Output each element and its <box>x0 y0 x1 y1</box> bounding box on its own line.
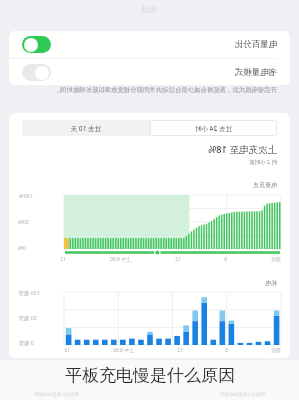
staticText: 电量历史 <box>253 181 277 189</box>
button[interactable]: 省电量模式 <box>9 59 290 85</box>
staticText: 上次充电至 18% <box>208 143 277 156</box>
staticText: 0 毫安 <box>18 339 34 347</box>
staticText: 电池 <box>141 4 157 14</box>
staticText: 50% <box>18 218 29 225</box>
staticText: 0% <box>18 244 26 251</box>
staticText: 12 <box>60 256 66 263</box>
other: Off <box>22 64 51 81</box>
button[interactable]: 过去 10 天 <box>22 120 150 136</box>
staticText: 平板充电慢是什么原因 <box>65 365 235 386</box>
staticText: 过去 24 小时 <box>195 124 232 133</box>
staticText: 约 2 小时前 <box>248 158 277 166</box>
staticText: 电量百分比 <box>234 39 277 50</box>
staticText: 省电量模式 <box>234 67 277 78</box>
staticText: 12 <box>64 347 70 354</box>
other: On <box>22 36 51 53</box>
staticText: 平板充电慢是什么原因 <box>34 392 79 398</box>
staticText: 上午 6:00 <box>109 256 131 263</box>
staticText: 上午 6:00 <box>112 347 134 354</box>
button[interactable]: 电量百分比 <box>9 31 290 58</box>
staticText: 12 <box>175 256 181 263</box>
staticText: 100 毫安 <box>18 289 40 297</box>
staticText: 100% <box>18 192 33 199</box>
staticText: 6 <box>224 256 227 263</box>
staticText: 过去 10 天 <box>70 124 101 133</box>
staticText: 6 <box>225 347 228 354</box>
staticText: 耗电 <box>265 279 277 287</box>
staticText: 开启省电模式后，系统将会减少后台活动并关闭部分视觉效果以延长续航时间。 <box>53 86 277 94</box>
staticText: 12 <box>177 347 183 354</box>
staticText: 平板充电慢是什么原因 <box>220 392 265 398</box>
staticText: 现在 <box>271 347 281 353</box>
staticText: 50 毫安 <box>18 314 37 322</box>
staticText: 现在 <box>271 256 281 262</box>
button[interactable]: 过去 24 小时 <box>150 120 277 136</box>
